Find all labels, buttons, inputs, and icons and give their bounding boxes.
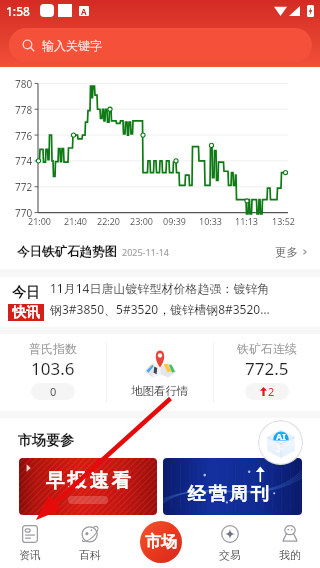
staticText: 0 bbox=[50, 384, 57, 399]
staticText: 资讯 bbox=[19, 548, 41, 562]
button[interactable]: 普氏指数 bbox=[0, 332, 106, 409]
staticText: 10:33 bbox=[199, 215, 223, 227]
staticText: 铁矿石连续 bbox=[237, 341, 297, 356]
staticText: 11月14日唐山镀锌型材价格趋强：镀锌角 bbox=[50, 280, 270, 296]
staticText: 地图看行情 bbox=[131, 384, 189, 398]
button[interactable]: 地图看行情 bbox=[107, 334, 213, 411]
staticText: 11:13 bbox=[235, 215, 259, 227]
button[interactable]: 百科 bbox=[60, 518, 120, 568]
button[interactable]: 资讯 bbox=[0, 518, 60, 568]
staticText: 780 bbox=[15, 77, 33, 91]
button[interactable]: 市场 bbox=[140, 521, 182, 563]
staticText: 13:52 bbox=[272, 215, 296, 227]
staticText: 输入关键字 bbox=[42, 38, 102, 53]
staticText: 百科 bbox=[79, 548, 101, 562]
staticText: 今日铁矿石趋势图 bbox=[17, 244, 117, 260]
staticText: 772.5 bbox=[245, 357, 289, 380]
staticText: 钢3#3850、5#3520，镀锌槽钢8#3520… bbox=[50, 301, 270, 317]
staticText: 快讯 bbox=[12, 304, 40, 321]
staticText: 2025-11-14 bbox=[122, 246, 169, 258]
staticText: 21:40 bbox=[64, 215, 88, 227]
staticText: 103.6 bbox=[31, 357, 75, 380]
button[interactable]: 今日 bbox=[0, 277, 320, 327]
staticText: 早报速看 bbox=[44, 469, 132, 493]
button[interactable]: 输入关键字 bbox=[9, 28, 312, 62]
button[interactable]: 铁矿石连续 bbox=[214, 332, 320, 409]
button[interactable]: 经营周刊 bbox=[163, 458, 302, 515]
staticText: 778 bbox=[15, 103, 33, 117]
staticText: 今日 bbox=[12, 284, 40, 302]
staticText: 1:58 bbox=[6, 3, 30, 19]
staticText: 市场要参 bbox=[18, 432, 74, 450]
staticText: 市场 bbox=[145, 532, 177, 552]
staticText: 23:00 bbox=[130, 215, 154, 227]
staticText: 我的 bbox=[279, 548, 301, 562]
button[interactable]: 我的 bbox=[260, 518, 320, 568]
staticText: 22:20 bbox=[97, 215, 121, 227]
staticText: AI bbox=[276, 430, 286, 442]
staticText: 普氏指数 bbox=[29, 341, 77, 356]
staticText: 770 bbox=[15, 206, 33, 220]
staticText: 09:39 bbox=[163, 215, 187, 227]
button[interactable]: AI 助手 bbox=[258, 420, 303, 465]
staticText: 更多 bbox=[275, 245, 298, 259]
button[interactable]: 早报速看 bbox=[19, 458, 157, 515]
button[interactable]: 更多 bbox=[275, 245, 309, 259]
staticText: 772 bbox=[15, 180, 33, 194]
button[interactable]: 交易 bbox=[200, 518, 260, 568]
staticText: A bbox=[81, 6, 87, 16]
staticText: 774 bbox=[15, 154, 33, 168]
staticText: 2 bbox=[268, 384, 275, 399]
staticText: 776 bbox=[15, 129, 33, 143]
staticText: 交易 bbox=[219, 548, 241, 562]
staticText: 经营周刊 bbox=[186, 483, 270, 506]
staticText: 21:00 bbox=[28, 215, 52, 227]
